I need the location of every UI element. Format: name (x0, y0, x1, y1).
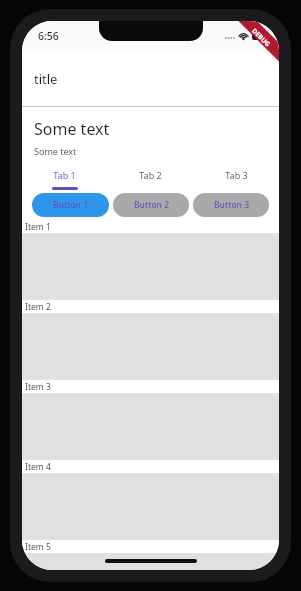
button[interactable]: Button 1 (32, 193, 109, 217)
button[interactable]: Button 2 (113, 193, 189, 217)
staticText: Button 2 (134, 199, 169, 211)
staticText: Some text (34, 118, 110, 140)
button[interactable]: Item 4 (22, 460, 279, 540)
staticText: Tab 1 (53, 169, 76, 181)
staticText: Button 1 (53, 199, 88, 211)
staticText: Item 1 (25, 221, 51, 233)
button[interactable]: Tab 3 (193, 166, 279, 190)
button[interactable]: Button 3 (193, 193, 269, 217)
staticText: Button 3 (214, 199, 249, 211)
staticText: Some text (34, 145, 77, 157)
staticText: Item 5 (25, 541, 51, 553)
staticText: Tab 3 (225, 169, 248, 181)
button[interactable]: Tab 2 (107, 166, 193, 190)
staticText: Item 4 (25, 461, 51, 473)
staticText: 6:56 (38, 29, 59, 43)
button[interactable]: Item 1 (22, 220, 279, 300)
button[interactable]: Tab 1 (22, 166, 107, 190)
staticText: Item 2 (25, 301, 51, 313)
staticText: DEBUG (250, 26, 273, 49)
button[interactable]: Item 2 (22, 300, 279, 380)
staticText: title (34, 70, 58, 88)
button[interactable]: Item 5 (22, 540, 279, 570)
staticText: Tab 2 (139, 169, 162, 181)
staticText: Item 3 (25, 381, 51, 393)
button[interactable]: Item 3 (22, 380, 279, 460)
